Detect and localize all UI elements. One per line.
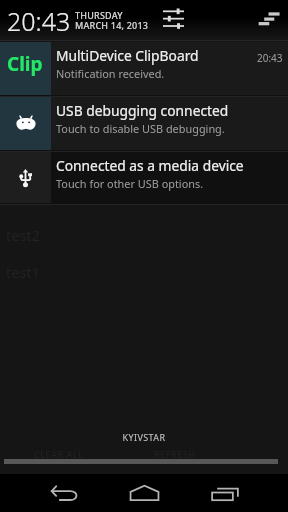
- staticText: 20:43: [257, 51, 283, 65]
- staticText: MARCH 14, 2013: [75, 19, 149, 31]
- button[interactable]: Home: [120, 474, 168, 512]
- button[interactable]: REFRESH: [154, 448, 196, 460]
- button[interactable]: Back: [40, 474, 88, 512]
- staticText: Clip: [7, 51, 43, 77]
- button[interactable]: USB debugging connected: [0, 97, 288, 152]
- staticText: KYIVSTAR: [0, 431, 288, 443]
- staticText: Connected as a media device: [56, 156, 244, 175]
- staticText: 20:43: [7, 4, 71, 38]
- staticText: THURSDAY: [75, 9, 123, 21]
- staticText: USB debugging connected: [56, 101, 229, 120]
- staticText: MultiDevice ClipBoard: [56, 46, 199, 65]
- staticText: Touch to disable USB debugging.: [56, 121, 225, 136]
- button[interactable]: Clip: [0, 42, 288, 97]
- button[interactable]: CLEAR ALL: [34, 448, 84, 460]
- staticText: test2: [6, 225, 40, 245]
- button[interactable]: Connected as a media device: [0, 152, 288, 205]
- staticText: Touch for other USB options.: [56, 176, 204, 191]
- button[interactable]: Quick settings: [163, 9, 184, 30]
- staticText: test1: [6, 262, 40, 282]
- staticText: Notification received.: [56, 66, 165, 81]
- button[interactable]: Recent apps: [201, 474, 249, 512]
